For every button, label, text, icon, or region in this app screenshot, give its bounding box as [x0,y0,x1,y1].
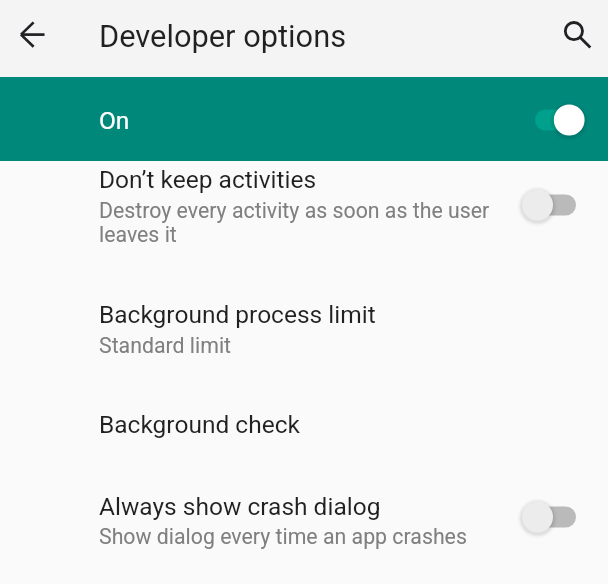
button[interactable]: Toggle setting [518,187,578,223]
staticText: Standard limit [99,333,232,358]
button[interactable] [0,388,608,470]
staticText: Background process limit [99,300,376,329]
button[interactable]: Toggle developer options [531,102,587,138]
staticText: Always show crash dialog [99,492,381,521]
button[interactable] [0,470,608,562]
button[interactable] [0,161,608,278]
staticText: Background check [99,410,300,439]
staticText: Developer options [99,18,347,54]
staticText: Don’t keep activities [99,165,317,194]
button[interactable]: Search [548,8,600,60]
button[interactable] [0,77,608,161]
staticText: Show dialog every time an app crashes [99,524,467,549]
button[interactable] [0,278,608,388]
staticText: Destroy every activity as soon as the us… [99,198,490,223]
button[interactable]: Navigate up [9,11,61,63]
button[interactable]: Toggle setting [518,499,578,535]
staticText: On [99,106,130,135]
staticText: leaves it [99,222,177,247]
